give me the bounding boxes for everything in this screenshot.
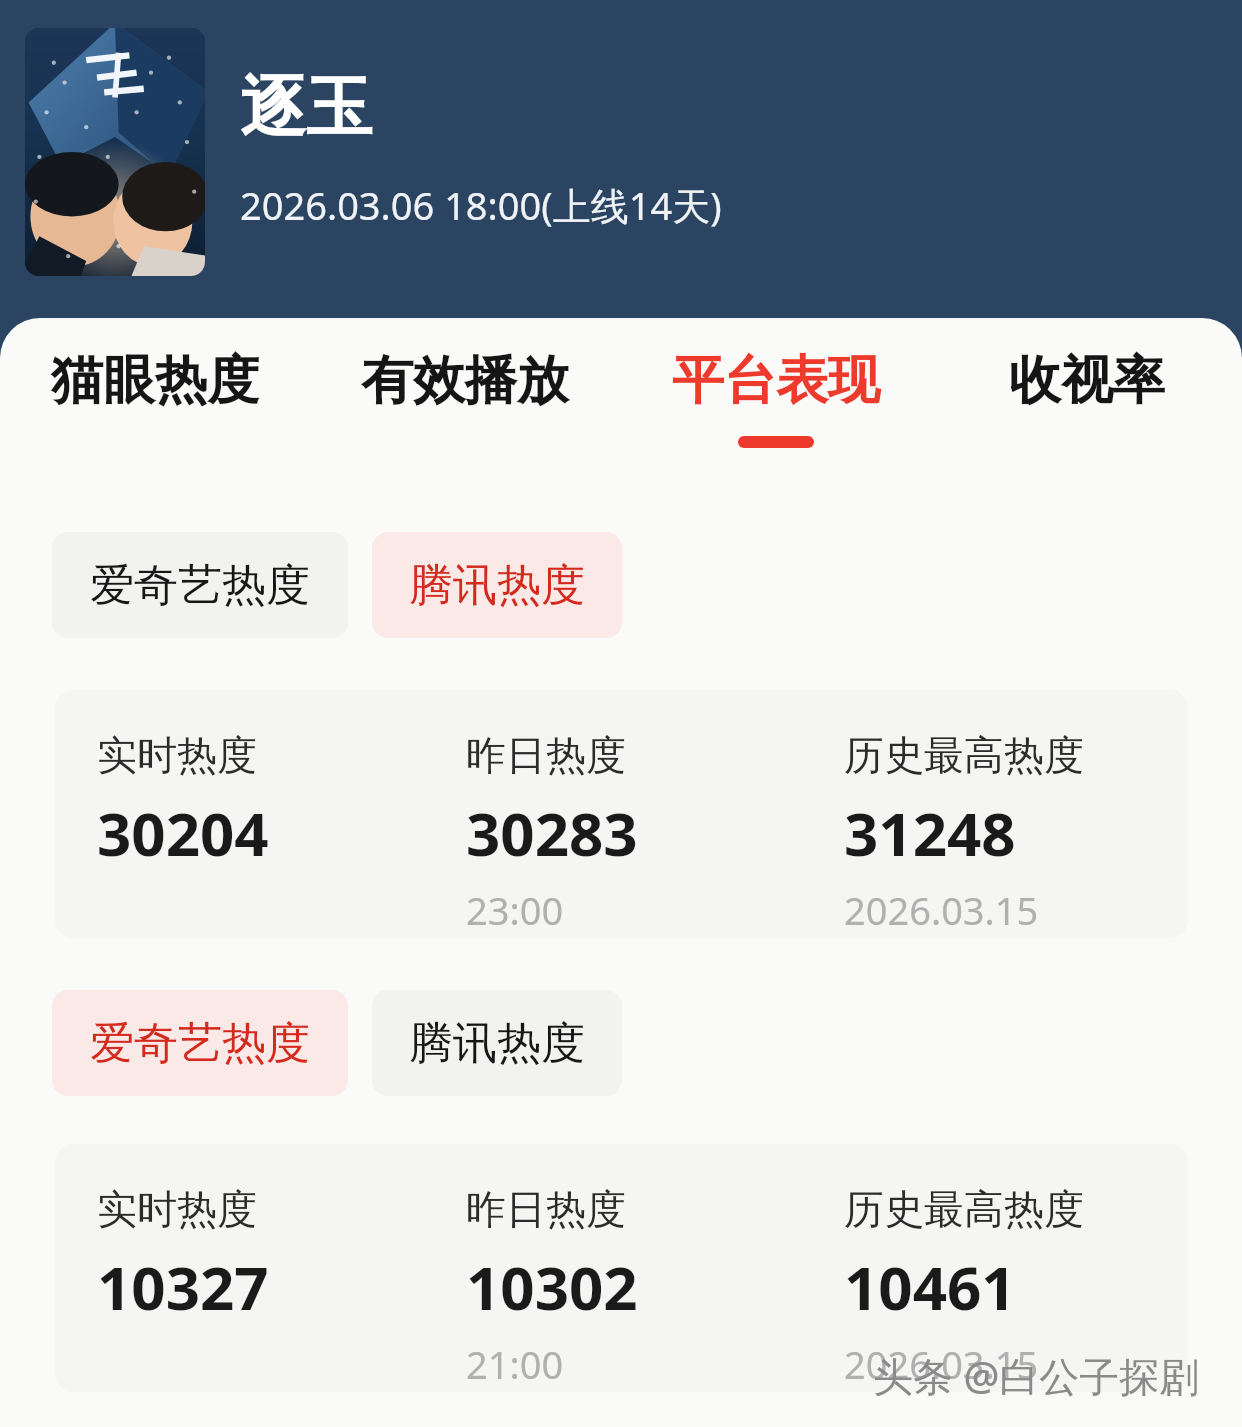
staticText: 实时热度 <box>97 1184 257 1234</box>
staticText: 腾讯热度 <box>409 1016 585 1071</box>
staticText: 2026.03.15 <box>844 884 1039 936</box>
staticText: 30204 <box>97 792 269 874</box>
button[interactable]: 收视率 <box>931 318 1242 480</box>
staticText: 平台表现 <box>672 348 880 414</box>
staticText: 10327 <box>97 1246 269 1328</box>
button[interactable]: 平台表现 <box>620 318 931 480</box>
button[interactable]: 有效播放 <box>310 318 620 480</box>
button[interactable]: 猫眼热度 <box>0 318 310 480</box>
staticText: 2026.03.06 18:00(上线14天) <box>240 179 722 231</box>
staticText: 23:00 <box>466 884 564 936</box>
staticText: 实时热度 <box>97 730 257 780</box>
staticText: 有效播放 <box>361 348 569 414</box>
button[interactable]: 实时热度 <box>55 690 1188 938</box>
staticText: 10461 <box>844 1246 1016 1328</box>
staticText: 逐玉 <box>240 66 372 149</box>
button[interactable]: 腾讯热度 <box>372 990 622 1096</box>
staticText: 30283 <box>466 792 638 874</box>
staticText: 10302 <box>466 1246 638 1328</box>
staticText: 历史最高热度 <box>844 730 1084 780</box>
button[interactable]: 逐玉 poster <box>25 28 205 276</box>
button[interactable]: 爱奇艺热度 <box>52 532 348 638</box>
staticText: 爱奇艺热度 <box>90 558 310 613</box>
staticText: 收视率 <box>1009 348 1165 414</box>
staticText: 21:00 <box>466 1338 564 1390</box>
button[interactable]: 腾讯热度 <box>372 532 622 638</box>
staticText: 历史最高热度 <box>844 1184 1084 1234</box>
staticText: 猫眼热度 <box>51 348 259 414</box>
staticText: 头条 @白公子探剧 <box>873 1348 1200 1403</box>
staticText: 昨日热度 <box>466 730 626 780</box>
button[interactable]: 爱奇艺热度 <box>52 990 348 1096</box>
button[interactable]: 实时热度 <box>55 1144 1188 1392</box>
staticText: 爱奇艺热度 <box>90 1016 310 1071</box>
staticText: 2026.03.15 <box>844 1338 1039 1390</box>
staticText: 腾讯热度 <box>409 558 585 613</box>
staticText: 昨日热度 <box>466 1184 626 1234</box>
staticText: 31248 <box>844 792 1016 874</box>
